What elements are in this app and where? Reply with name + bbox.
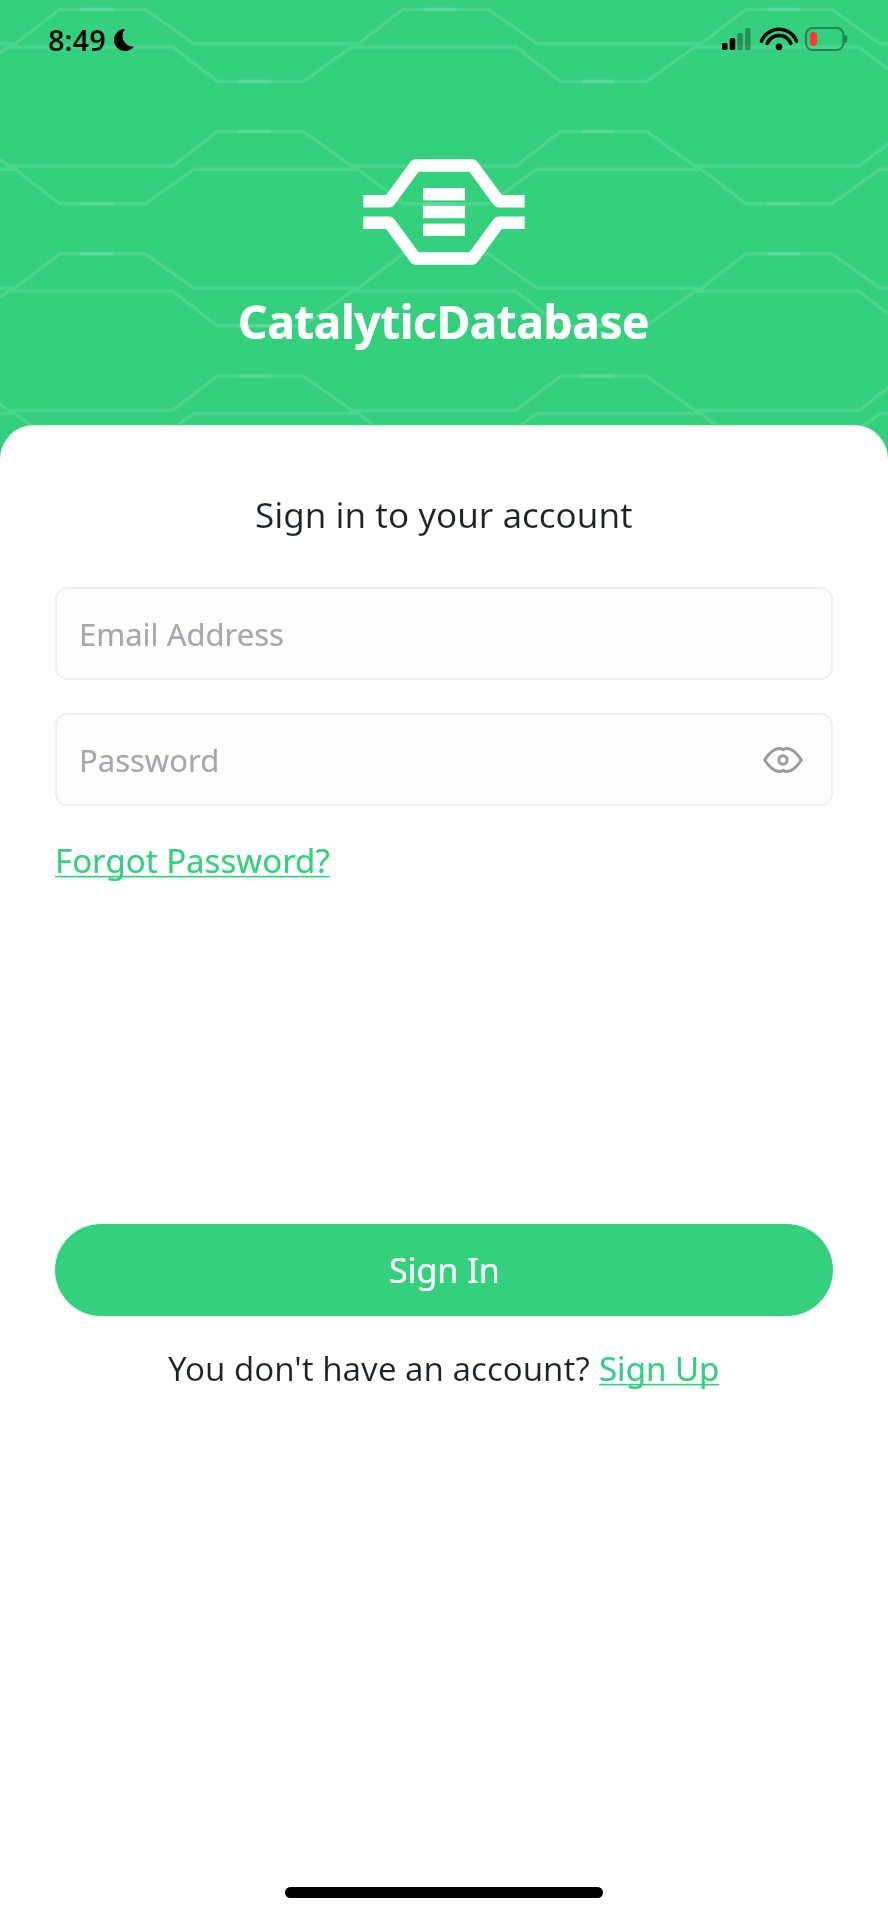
button[interactable]: Sign Up: [599, 1346, 720, 1391]
button[interactable]: Password: [55, 713, 833, 806]
button[interactable]: Show password: [757, 734, 809, 786]
button[interactable]: Sign In: [55, 1224, 833, 1316]
staticText: Email Address: [79, 613, 284, 655]
staticText: Sign in to your account: [255, 491, 633, 539]
staticText: You don't have an account?: [168, 1346, 599, 1391]
button[interactable]: Email Address: [55, 587, 833, 680]
staticText: Sign In: [389, 1247, 500, 1293]
staticText: Forgot Password?: [55, 838, 330, 883]
staticText: CatalyticDatabase: [238, 290, 650, 353]
staticText: Sign Up: [599, 1346, 720, 1391]
staticText: 8:49: [48, 20, 106, 59]
staticText: Password: [79, 739, 220, 781]
button[interactable]: Forgot Password?: [55, 838, 330, 883]
